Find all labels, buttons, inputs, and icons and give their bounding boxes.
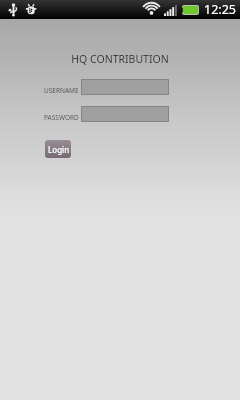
staticText: USERNAME (44, 86, 79, 95)
button[interactable]: Login (45, 140, 71, 158)
staticText: PASSWORD (44, 113, 79, 122)
staticText: Login (48, 144, 70, 155)
staticText: 12:25 (204, 1, 236, 18)
staticText: HQ CONTRIBUTION (0, 52, 240, 66)
